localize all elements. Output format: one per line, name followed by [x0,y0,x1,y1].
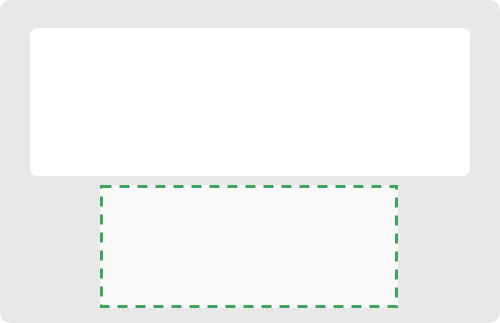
button[interactable]: Drop zone [100,185,398,308]
